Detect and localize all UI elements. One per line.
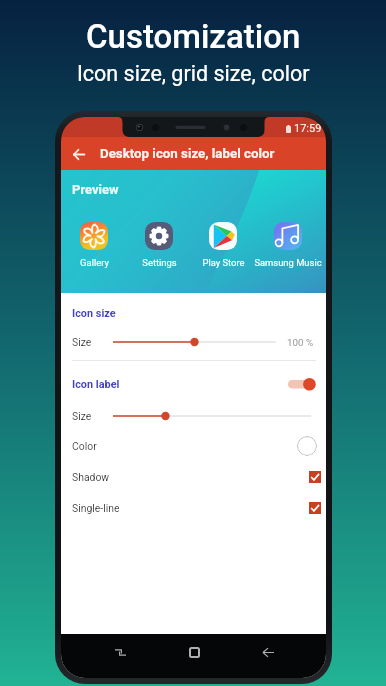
button[interactable]: Back <box>67 142 91 166</box>
staticText: Single-line <box>72 502 120 514</box>
button[interactable]: Gallery <box>61 216 139 270</box>
button[interactable]: Size <box>61 404 326 428</box>
staticText: Icon label <box>72 378 120 391</box>
button[interactable]: Checkbox <box>309 471 321 483</box>
button[interactable]: Checkbox <box>309 502 321 514</box>
staticText: Desktop icon size, label color <box>100 146 275 162</box>
staticText: 100 % <box>287 337 314 348</box>
staticText: Customization <box>86 17 301 56</box>
button[interactable]: Size <box>61 330 326 354</box>
button[interactable]: Single-line <box>61 494 326 522</box>
button[interactable]: Color <box>61 432 326 460</box>
staticText: Size <box>72 410 92 422</box>
button[interactable]: Settings <box>114 216 204 270</box>
button[interactable]: Samsung Music <box>243 216 326 270</box>
staticText: Icon size <box>72 307 116 320</box>
button[interactable]: Recents <box>105 637 135 667</box>
staticText: Samsung Music <box>254 257 322 268</box>
staticText: 17:59 <box>294 122 322 135</box>
staticText: Color <box>72 440 97 452</box>
staticText: Icon size, grid size, color <box>77 61 310 86</box>
button[interactable]: Pick label color <box>297 436 317 456</box>
staticText: Shadow <box>72 471 110 483</box>
button[interactable]: Home <box>179 637 209 667</box>
staticText: Preview <box>72 182 119 197</box>
staticText: Size <box>72 336 92 348</box>
staticText: Settings <box>142 257 177 268</box>
staticText: Play Store <box>202 257 245 268</box>
button[interactable]: Play Store <box>178 216 268 270</box>
staticText: Gallery <box>80 257 109 268</box>
button[interactable]: Back <box>253 637 283 667</box>
button[interactable]: Shadow <box>61 463 326 491</box>
button[interactable]: Toggle icon label <box>287 376 315 391</box>
